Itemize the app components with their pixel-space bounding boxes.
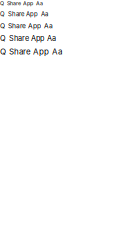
staticText: Share App xyxy=(9,47,49,56)
staticText: Q xyxy=(0,34,6,43)
staticText: Q xyxy=(0,22,5,30)
staticText: Share App xyxy=(9,34,44,43)
staticText: Share App xyxy=(7,0,33,6)
staticText: Q xyxy=(0,10,5,18)
staticText: Q xyxy=(0,0,4,6)
staticText: Aa xyxy=(44,22,53,30)
staticText: Share App xyxy=(8,22,41,30)
staticText: Aa xyxy=(41,10,48,18)
staticText: Share App xyxy=(8,10,38,18)
staticText: Aa xyxy=(36,0,43,6)
staticText: Aa xyxy=(52,47,62,56)
staticText: Aa xyxy=(47,34,56,43)
staticText: Q xyxy=(0,47,6,56)
